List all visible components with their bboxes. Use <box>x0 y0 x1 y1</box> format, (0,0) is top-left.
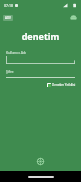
button[interactable]: Denetim Yetkilisi <box>46 82 77 88</box>
button[interactable] <box>6 56 75 64</box>
button[interactable]: Settings <box>36 157 45 166</box>
staticText: denetim <box>0 30 81 42</box>
staticText: Şifre <box>6 69 14 74</box>
button[interactable]: App icon <box>69 13 78 22</box>
staticText: 07:18 <box>4 3 13 8</box>
button[interactable]: Menu <box>3 15 13 21</box>
staticText: ADV <box>5 16 11 20</box>
staticText: Denetim Yetkilisi <box>52 83 76 87</box>
staticText: Kullanıcı Adı <box>6 50 26 55</box>
